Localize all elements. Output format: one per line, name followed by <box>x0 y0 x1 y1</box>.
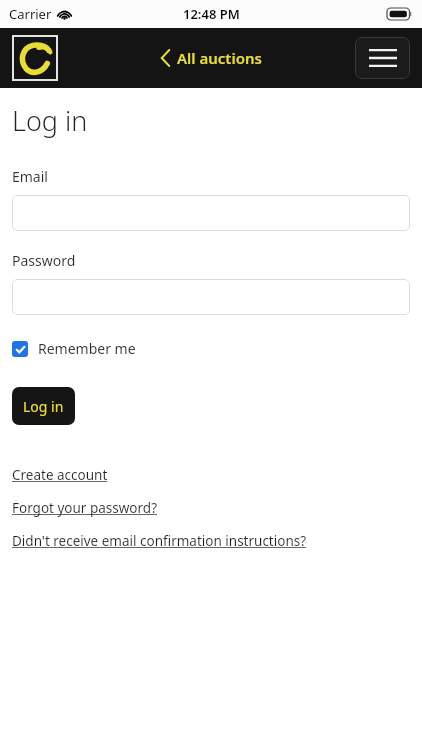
staticText: Password <box>12 251 76 270</box>
staticText: Carrier <box>9 5 52 23</box>
staticText: Log in <box>12 102 88 139</box>
button[interactable]: All auctions <box>155 44 268 72</box>
button[interactable]: Home <box>12 35 58 81</box>
button[interactable]: Log in <box>12 387 75 425</box>
button[interactable]: Remember me <box>12 337 136 360</box>
button[interactable]: Forgot your password? <box>12 498 158 518</box>
staticText: Create account <box>12 466 108 484</box>
staticText: Forgot your password? <box>12 499 158 517</box>
staticText: Email <box>12 167 48 186</box>
button[interactable]: Email input <box>12 195 410 231</box>
button[interactable]: Password input <box>12 279 410 315</box>
button[interactable]: Create account <box>12 465 108 485</box>
staticText: All auctions <box>177 48 262 68</box>
staticText: 12:48 PM <box>183 5 240 23</box>
staticText: Remember me <box>38 339 136 358</box>
staticText: Log in <box>23 397 64 416</box>
staticText: Didn't receive email confirmation instru… <box>12 532 307 550</box>
button[interactable]: Didn't receive email confirmation instru… <box>12 531 307 551</box>
button[interactable]: Menu <box>355 37 410 79</box>
